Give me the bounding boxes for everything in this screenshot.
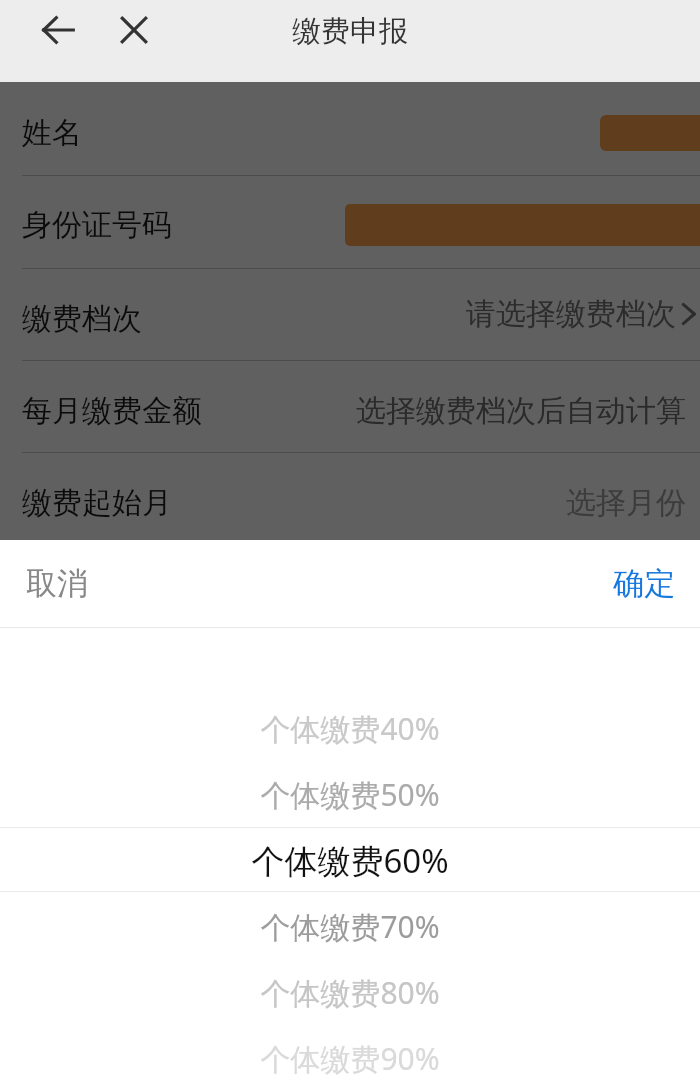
button[interactable]: 缴费档次 <box>0 268 700 360</box>
button[interactable]: 个体缴费50% <box>0 763 700 825</box>
staticText: 个体缴费70% <box>260 906 440 947</box>
button[interactable]: 个体缴费80% <box>0 961 700 1023</box>
button[interactable]: Back <box>30 2 86 58</box>
staticText: 选择缴费档次后自动计算 <box>0 392 686 430</box>
staticText: 个体缴费90% <box>260 1038 440 1079</box>
staticText: 个体缴费50% <box>260 774 440 815</box>
staticText: 缴费档次 <box>22 300 142 338</box>
staticText: 姓名 <box>22 114 82 152</box>
button[interactable]: 个体缴费70% <box>0 895 700 957</box>
button[interactable]: 个体缴费40% <box>0 697 700 759</box>
staticText: 每月缴费金额 <box>22 392 202 430</box>
staticText: 缴费起始月 <box>22 484 172 522</box>
staticText: 确定 <box>613 564 675 603</box>
button[interactable]: Close <box>106 2 162 58</box>
staticText: 缴费申报 <box>0 13 700 50</box>
button[interactable]: 确定 <box>550 540 700 627</box>
button[interactable]: 取消 <box>0 540 150 627</box>
staticText: 身份证号码 <box>22 206 172 244</box>
button[interactable]: 个体缴费60% <box>0 829 700 891</box>
staticText: 个体缴费40% <box>260 708 440 749</box>
button[interactable]: 缴费起始月 <box>0 452 700 540</box>
staticText: 请选择缴费档次 <box>466 295 676 333</box>
staticText: 个体缴费60% <box>251 838 449 883</box>
staticText: 个体缴费80% <box>260 972 440 1013</box>
staticText: 取消 <box>26 564 88 603</box>
button[interactable]: 个体缴费90% <box>0 1027 700 1089</box>
staticText: 选择月份 <box>0 484 686 522</box>
